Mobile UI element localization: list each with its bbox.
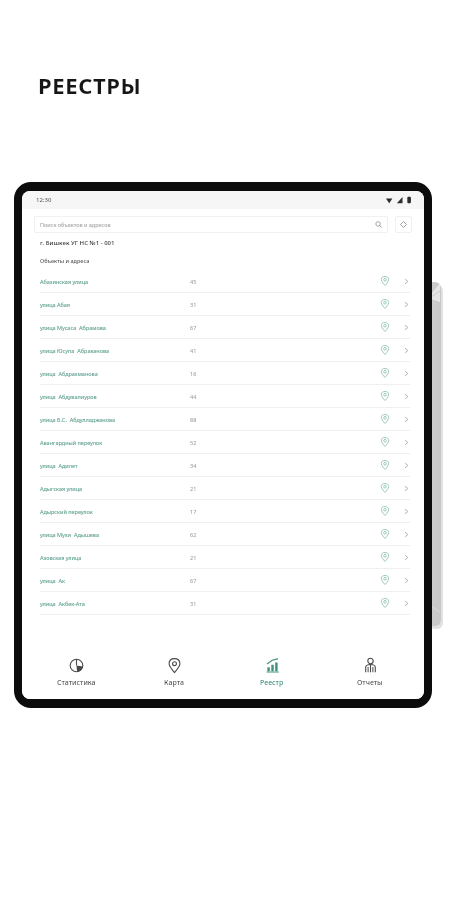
staticText: Отчеты <box>357 678 383 688</box>
staticText: 12:30 <box>36 196 52 204</box>
staticText: Реестр <box>260 678 284 688</box>
staticText: Абазинская улица <box>40 278 190 285</box>
staticText: 21 <box>190 485 380 492</box>
staticText: 21 <box>190 554 380 561</box>
staticText: улица Мухи Адышева <box>40 531 190 538</box>
staticText: 44 <box>190 393 380 400</box>
staticText: улица Абая <box>40 301 190 308</box>
staticText: 31 <box>190 301 380 308</box>
staticText: улица Абдрахманова <box>40 370 190 377</box>
button[interactable]: Адырский переулок <box>22 500 424 523</box>
staticText: Авангардный переулок <box>40 439 190 446</box>
staticText: Статистика <box>57 678 96 688</box>
staticText: 62 <box>190 531 380 538</box>
staticText: 31 <box>190 600 380 607</box>
staticText: 41 <box>190 347 380 354</box>
staticText: 67 <box>190 324 380 331</box>
button[interactable]: Авангардный переулок <box>22 431 424 454</box>
button[interactable]: Абазинская улица <box>22 270 424 293</box>
button[interactable]: улица Юсупа Абраканова <box>22 339 424 362</box>
button[interactable]: улица Адилет <box>22 454 424 477</box>
staticText: улица Акбек-Ата <box>40 600 190 607</box>
staticText: улица Адилет <box>40 462 190 469</box>
button[interactable]: Адыгская улица <box>22 477 424 500</box>
staticText: 17 <box>190 508 380 515</box>
button[interactable]: улица Мусаса Абрамова <box>22 316 424 339</box>
staticText: 34 <box>190 462 380 469</box>
staticText: Карта <box>164 678 184 688</box>
staticText: РЕЕСТРЫ <box>38 70 142 100</box>
button[interactable]: Статистика <box>32 656 120 690</box>
staticText: Азовская улица <box>40 554 190 561</box>
staticText: улица Б.С. Абдулладжанова <box>40 416 190 423</box>
button[interactable]: улица Абдувалиуров <box>22 385 424 408</box>
button[interactable]: улица Абая <box>22 293 424 316</box>
staticText: Адыгская улица <box>40 485 190 492</box>
button[interactable]: Карта <box>130 656 218 690</box>
staticText: 45 <box>190 278 380 285</box>
staticText: Адырский переулок <box>40 508 190 515</box>
button[interactable]: Азовская улица <box>22 546 424 569</box>
staticText: 52 <box>190 439 380 446</box>
button[interactable]: Отчеты <box>326 656 414 690</box>
button[interactable]: Фильтр <box>395 216 412 233</box>
staticText: улица Мусаса Абрамова <box>40 324 190 331</box>
button[interactable]: улица Ак <box>22 569 424 592</box>
staticText: 67 <box>190 577 380 584</box>
staticText: г. Бишкек УГ НС №1 - 001 <box>40 239 115 247</box>
button[interactable]: улица Б.С. Абдулладжанова <box>22 408 424 431</box>
button[interactable]: Реестр <box>228 656 316 690</box>
button[interactable]: улица Акбек-Ата <box>22 592 424 615</box>
staticText: Объекты и адреса <box>40 257 90 264</box>
staticText: 88 <box>190 416 380 423</box>
button[interactable]: улица Абдрахманова <box>22 362 424 385</box>
staticText: Поиск объектов и адресов <box>40 221 375 228</box>
staticText: улица Ак <box>40 577 190 584</box>
staticText: улица Юсупа Абраканова <box>40 347 190 354</box>
staticText: улица Абдувалиуров <box>40 393 190 400</box>
button[interactable]: Поиск объектов и адресов <box>34 216 388 233</box>
staticText: 16 <box>190 370 380 377</box>
button[interactable]: улица Мухи Адышева <box>22 523 424 546</box>
